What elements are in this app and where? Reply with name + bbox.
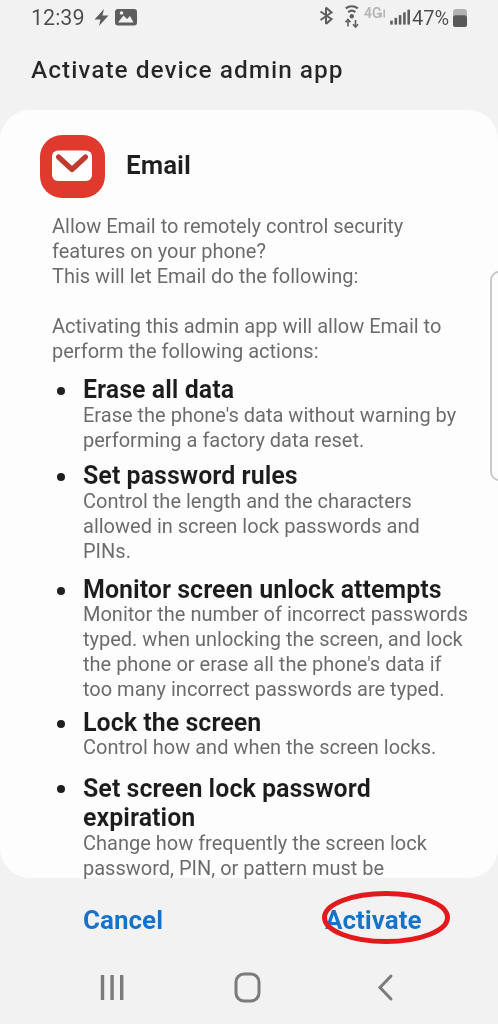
staticText: Lock the screen: [83, 708, 262, 737]
staticText: Cancel: [83, 905, 164, 935]
staticText: Activate: [325, 905, 422, 935]
staticText: Set screen lock password expiration: [83, 774, 371, 832]
button[interactable]: Cancel: [60, 890, 190, 948]
staticText: 47%: [412, 6, 450, 29]
staticText: Allow Email to remotely control security…: [52, 214, 404, 288]
staticText: Change how frequently the screen lock pa…: [83, 831, 427, 880]
staticText: 4G: [364, 5, 382, 21]
staticText: Set password rules: [83, 461, 298, 490]
button[interactable]: [216, 962, 280, 1014]
staticText: Email: [126, 150, 191, 180]
staticText: Erase the phone's data without warning b…: [83, 403, 457, 452]
staticText: Erase all data: [83, 375, 235, 404]
staticText: Control how and when the screen locks.: [83, 735, 437, 758]
staticText: Activating this admin app will allow Ema…: [52, 314, 442, 363]
button[interactable]: [80, 962, 144, 1014]
staticText: Control the length and the characters al…: [83, 489, 420, 563]
staticText: 12:39: [31, 5, 85, 30]
staticText: Activate device admin app: [31, 55, 344, 84]
staticText: Monitor screen unlock attempts: [83, 575, 442, 604]
staticText: Monitor the number of incorrect password…: [83, 602, 469, 701]
button[interactable]: Activate: [305, 890, 450, 948]
button[interactable]: [356, 962, 420, 1014]
